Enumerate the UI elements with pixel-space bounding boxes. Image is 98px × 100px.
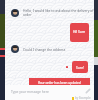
button[interactable]: Could I change the address bbox=[11, 45, 62, 53]
staticText: by Example bbox=[75, 96, 91, 100]
button[interactable]: Type your message here bbox=[5, 85, 94, 95]
staticText: Type your message here bbox=[11, 89, 49, 93]
staticText: Hello, I would like to ask about the del… bbox=[23, 8, 98, 12]
button[interactable]: Your order has been updated bbox=[29, 78, 90, 85]
staticText: Your order has been updated bbox=[38, 81, 81, 85]
staticText: Hi! Sure bbox=[73, 29, 86, 33]
staticText: order bbox=[23, 12, 32, 16]
button[interactable]: Sure! bbox=[72, 61, 88, 73]
button[interactable]: Hello, I would like to ask about the del… bbox=[11, 9, 96, 17]
staticText: Sure! bbox=[76, 65, 84, 69]
button[interactable]: Send message bbox=[85, 88, 91, 94]
button[interactable]: Hi! Sure bbox=[70, 23, 89, 42]
staticText: Could I change the address bbox=[23, 47, 66, 51]
